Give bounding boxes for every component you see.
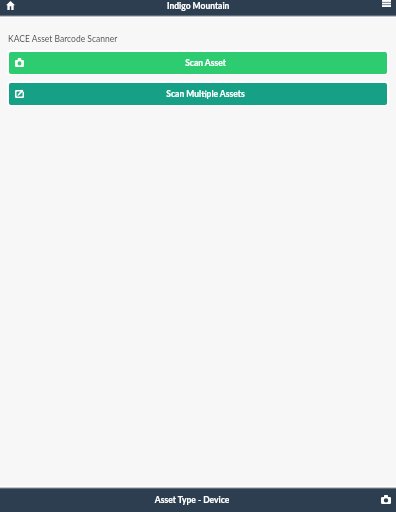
staticText: KACE Asset Barcode Scanner (8, 34, 118, 44)
button[interactable]: Home (6, 1, 15, 10)
staticText: Asset Type - Device (3, 495, 381, 505)
staticText: Indigo Mountain (167, 1, 230, 11)
staticText: Scan Asset (24, 58, 387, 68)
button[interactable]: Scan Multiple Assets (9, 83, 387, 105)
staticText: Scan Multiple Assets (24, 89, 387, 99)
button[interactable]: Scan Asset (9, 52, 387, 74)
button[interactable]: Menu (382, 0, 391, 7)
button[interactable]: Camera (381, 495, 391, 504)
